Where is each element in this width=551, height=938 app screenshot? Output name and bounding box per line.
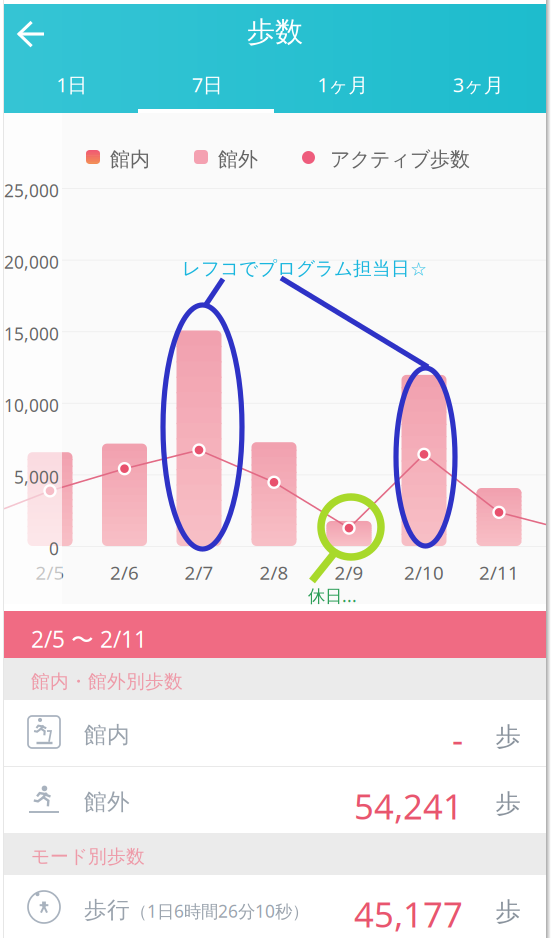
button[interactable]: 1日 <box>4 58 139 111</box>
staticText: 館内 <box>110 147 150 172</box>
button[interactable]: 7日 <box>139 58 275 111</box>
staticText: 54,241 <box>354 783 463 829</box>
staticText: 1ヶ月 <box>317 71 368 98</box>
staticText: モード別歩数 <box>31 845 145 868</box>
button[interactable]: 館外 <box>4 767 546 833</box>
staticText: 7日 <box>192 71 223 98</box>
staticText: 2/5 <box>35 560 64 585</box>
button[interactable]: 館内 <box>4 700 546 766</box>
staticText: 25,000 <box>4 179 59 202</box>
staticText: 3ヶ月 <box>453 71 504 98</box>
staticText: 歩 <box>495 788 520 819</box>
button[interactable]: 3ヶ月 <box>410 58 546 111</box>
staticText: 2/6 <box>110 560 139 585</box>
staticText: 館内・館外別歩数 <box>31 670 183 693</box>
staticText: 45,177 <box>354 891 463 937</box>
staticText: 1日 <box>56 71 87 98</box>
staticText: 歩行 <box>84 896 130 924</box>
staticText: 2/5 〜 2/11 <box>31 624 147 654</box>
staticText: 2/11 <box>479 560 519 585</box>
staticText: 館外 <box>218 147 258 172</box>
staticText: 2/7 <box>184 560 213 585</box>
staticText: 20,000 <box>4 251 59 274</box>
staticText: 15,000 <box>4 322 59 345</box>
staticText: レフコでプログラム担当日☆ <box>182 257 427 280</box>
staticText: 歩 <box>495 721 520 752</box>
staticText: 2/8 <box>259 560 288 585</box>
staticText: 5,000 <box>14 465 59 488</box>
staticText: （1日6時間26分10秒） <box>130 899 309 922</box>
staticText: 2/9 <box>334 560 363 585</box>
staticText: アクティブ歩数 <box>330 147 470 172</box>
staticText: 歩 <box>495 896 520 927</box>
button[interactable]: 歩行 <box>4 875 546 938</box>
button[interactable]: Back <box>4 4 60 62</box>
staticText: 館内 <box>84 721 130 749</box>
staticText: 2/10 <box>404 560 444 585</box>
staticText: - <box>452 716 463 762</box>
staticText: 館外 <box>84 788 130 816</box>
staticText: 歩数 <box>247 15 303 49</box>
staticText: 休日... <box>308 584 357 607</box>
staticText: 10,000 <box>4 394 59 417</box>
staticText: 0 <box>49 537 59 560</box>
button[interactable]: 1ヶ月 <box>275 58 410 111</box>
